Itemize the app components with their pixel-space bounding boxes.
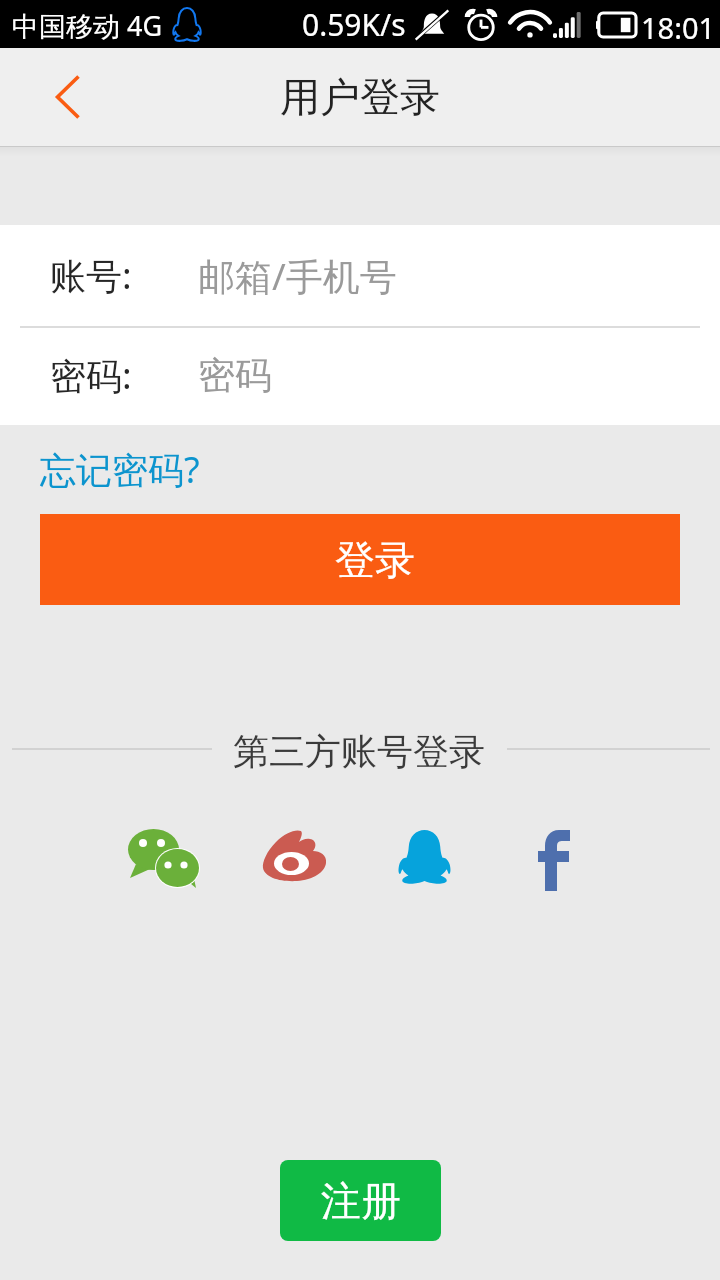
staticText: 18:01 (641, 8, 716, 47)
staticText: 忘记密码? (40, 445, 200, 494)
button[interactable]: QQ login (381, 822, 461, 902)
staticText: 第三方账号登录 (233, 729, 485, 774)
staticText: 登录 (335, 535, 415, 585)
staticText: 密码 (198, 352, 272, 399)
button[interactable]: 密码: (0, 325, 720, 425)
button[interactable]: 忘记密码? (40, 443, 200, 495)
button[interactable]: 注册 (280, 1160, 441, 1241)
staticText: 中国移动 4G (12, 7, 163, 44)
button[interactable]: 登录 (40, 514, 680, 605)
button[interactable]: WeChat login (123, 822, 203, 902)
button[interactable]: Back (20, 48, 116, 146)
staticText: 注册 (321, 1176, 401, 1226)
button[interactable]: Facebook login (514, 822, 594, 902)
staticText: 邮箱/手机号 (198, 250, 397, 301)
staticText: 密码: (50, 351, 132, 400)
button[interactable]: Weibo login (255, 822, 335, 902)
staticText: 账号: (50, 251, 132, 300)
button[interactable]: 账号: (0, 225, 720, 325)
staticText: 用户登录 (280, 72, 440, 122)
staticText: 0.59K/s (302, 4, 406, 45)
